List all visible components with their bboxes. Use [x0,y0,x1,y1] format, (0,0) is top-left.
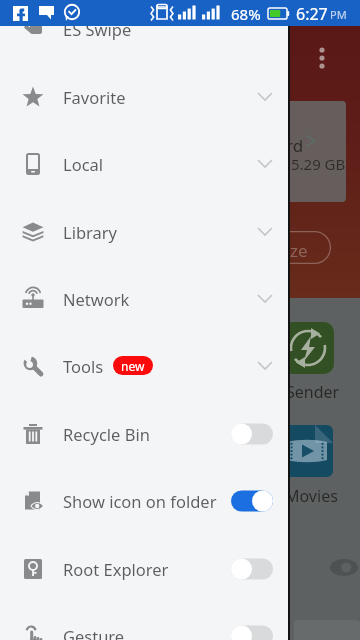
staticText: Gesture [63,625,125,640]
button[interactable]: Network [0,265,288,332]
button[interactable]: On [231,490,273,512]
staticText: 3 / 5.29 GB [269,154,346,174]
button[interactable]: Favorite [0,63,288,130]
staticText: Tools [63,355,104,377]
staticText: Recycle Bin [63,423,150,445]
button[interactable]: Off [231,558,273,580]
button[interactable]: Off [231,423,273,445]
button[interactable]: Local [0,130,288,197]
button[interactable]: Library [0,198,288,265]
staticText: Sender [286,381,340,403]
staticText: PM [330,7,347,22]
staticText: Movies [285,485,338,507]
staticText: 6:27 [296,3,328,25]
staticText: rd [286,134,304,157]
button[interactable]: Root Explorer [0,535,288,602]
staticText: Network [63,288,130,310]
staticText: ze [290,239,308,262]
staticText: new [121,358,145,374]
staticText: Show icon on folder [63,490,217,512]
button[interactable]: ES Swipe [0,0,288,62]
button[interactable]: Tools [0,332,288,399]
staticText: Local [63,153,104,175]
button[interactable]: Recycle Bin [0,400,288,467]
staticText: 68% [231,4,261,24]
button[interactable]: Off [231,625,273,640]
button[interactable]: Show icon on folder [0,467,288,534]
button[interactable]: Gesture [0,602,288,640]
staticText: ES Swipe [63,18,132,40]
staticText: Root Explorer [63,558,169,580]
staticText: Library [63,221,118,243]
staticText: Favorite [63,86,126,108]
